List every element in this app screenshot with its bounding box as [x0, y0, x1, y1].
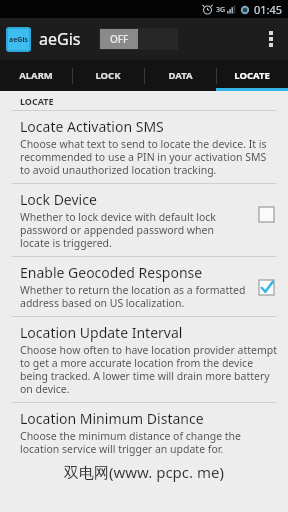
staticText: 3G	[216, 5, 226, 15]
staticText: Enable Geocoded Response	[20, 263, 203, 282]
staticText: LOCATE	[20, 95, 54, 107]
staticText: Location Minimum Distance	[20, 409, 204, 428]
staticText: Locate Activation SMS	[20, 117, 164, 136]
staticText: aeGis	[9, 35, 29, 45]
staticText: LOCK	[95, 69, 121, 82]
staticText: 双电网(www. pcpc. me)	[64, 462, 224, 482]
staticText: Lock Device	[20, 190, 97, 209]
button[interactable]: LOCATE	[216, 60, 288, 91]
staticText: Choose what text to send to locate the d…	[20, 137, 278, 177]
button[interactable]: DATA	[144, 60, 216, 91]
staticText: Whether to lock device with default lock…	[20, 210, 246, 250]
staticText: LOCATE	[234, 69, 270, 82]
button[interactable]: Lock Device	[0, 184, 288, 256]
button[interactable]: App icon	[6, 27, 31, 52]
staticText: DATA	[168, 69, 193, 82]
button[interactable]: LOCK	[72, 60, 144, 91]
button[interactable]: Checked	[254, 275, 278, 299]
staticText: OFF	[110, 32, 129, 46]
staticText: Choose the minimum distance of change th…	[20, 429, 278, 456]
staticText: ALARM	[19, 69, 53, 82]
button[interactable]: More options	[258, 18, 284, 60]
staticText: aeGis	[39, 28, 81, 50]
button[interactable]: Location Update Interval	[0, 317, 288, 402]
staticText: Location Update Interval	[20, 323, 183, 342]
button[interactable]: Locate Activation SMS	[0, 111, 288, 183]
button[interactable]: ALARM	[0, 60, 72, 91]
button[interactable]: Unchecked	[254, 202, 278, 226]
button[interactable]: Location Minimum Distance	[0, 403, 288, 462]
button[interactable]: Toggle aeGis off	[99, 28, 178, 50]
staticText: 01:45	[254, 2, 283, 17]
staticText: Whether to return the location as a form…	[20, 283, 246, 310]
button[interactable]: Enable Geocoded Response	[0, 257, 288, 316]
staticText: Choose how often to have location provid…	[20, 343, 278, 396]
